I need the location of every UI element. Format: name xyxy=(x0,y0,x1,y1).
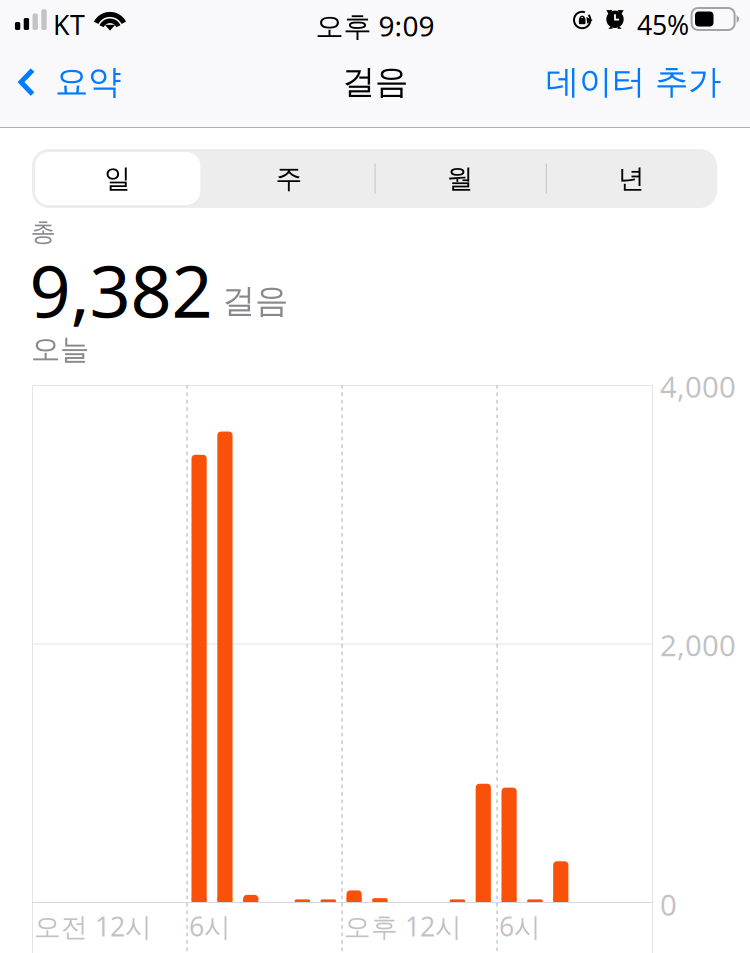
button[interactable]: 요약 xyxy=(0,50,139,114)
staticText: 걸음 xyxy=(222,280,288,322)
staticText: 4,000 xyxy=(660,367,736,406)
button[interactable]: 년 xyxy=(546,149,717,208)
staticText: 요약 xyxy=(55,61,121,103)
staticText: 오후 12시 xyxy=(344,908,462,944)
staticText: 데이터 추가 xyxy=(546,61,721,103)
staticText: 총 xyxy=(30,216,55,248)
staticText: 오후 9:09 xyxy=(315,6,434,45)
button[interactable]: 데이터 추가 xyxy=(517,50,750,114)
staticText: 6시 xyxy=(499,908,541,944)
staticText: 0 xyxy=(660,885,677,924)
staticText: 월 xyxy=(447,162,474,195)
staticText: 오늘 xyxy=(31,331,89,368)
staticText: 45% xyxy=(637,7,689,42)
staticText: 주 xyxy=(275,162,302,195)
button[interactable]: 일 xyxy=(32,149,203,208)
button[interactable]: 월 xyxy=(374,149,546,208)
button[interactable]: 주 xyxy=(203,149,374,208)
staticText: 6시 xyxy=(189,908,231,944)
staticText: KT xyxy=(53,7,85,42)
staticText: 걸음 xyxy=(342,61,408,103)
staticText: 오전 12시 xyxy=(34,908,152,944)
staticText: 일 xyxy=(104,162,131,195)
staticText: 2,000 xyxy=(660,625,736,664)
staticText: 9,382 xyxy=(29,242,212,338)
staticText: 년 xyxy=(618,162,645,195)
